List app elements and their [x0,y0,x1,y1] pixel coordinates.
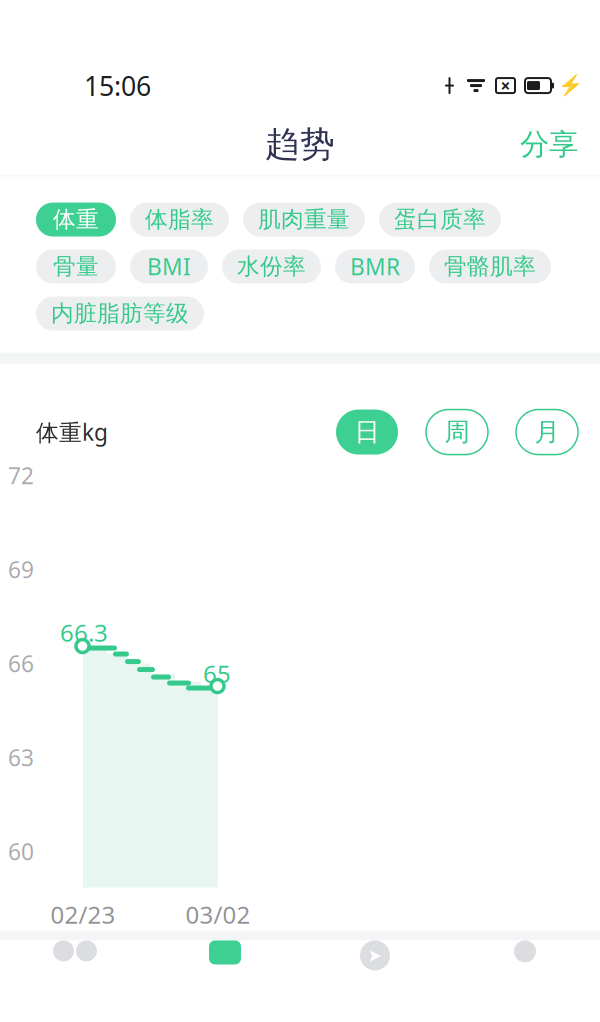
staticText: BMR [350,251,400,282]
staticText: 月 [534,416,559,448]
staticText: 周 [444,416,469,448]
staticText: 蛋白质率 [394,206,486,233]
staticText: 03/02 [185,899,250,930]
staticText: 66.3 [60,617,108,648]
button[interactable]: 发现 [300,940,450,964]
staticText: 趋势 [265,123,335,166]
button[interactable]: BMI [130,250,208,284]
button[interactable]: 内脏脂肪等级 [36,297,204,331]
staticText: 日 [354,416,379,448]
button[interactable]: 月 [516,410,578,455]
button[interactable]: 体脂率 [130,203,229,237]
button[interactable]: 蛋白质率 [379,203,501,237]
staticText: 骨骼肌率 [444,253,536,280]
button[interactable]: 水份率 [222,250,321,284]
staticText: 内脏脂肪等级 [51,300,189,327]
staticText: 骨量 [53,253,99,280]
staticText: 体重kg [36,417,108,447]
button[interactable]: 肌肉重量 [243,203,365,237]
button[interactable]: 骨骼肌率 [429,250,551,284]
staticText: 66 [8,648,34,679]
staticText: 02/23 [50,899,115,930]
staticText: 72 [8,460,34,491]
staticText: 63 [8,742,34,773]
button[interactable]: BMR [335,250,415,284]
staticText: × [500,74,510,97]
staticText: 水份率 [237,253,306,280]
button[interactable]: 分享 [506,118,592,170]
staticText: 肌肉重量 [258,206,350,233]
button[interactable]: 周 [426,410,488,455]
staticText: ⚡ [557,74,582,97]
staticText: 体重 [53,206,99,233]
staticText: 69 [8,554,34,585]
staticText: 15:06 [84,68,151,103]
staticText: 65 [203,658,231,689]
button[interactable]: 体重 [36,203,116,237]
button[interactable]: 趋势 [150,940,300,964]
button[interactable]: 称重 [0,940,150,964]
staticText: ➤ [367,946,382,965]
staticText: 60 [8,836,34,867]
button[interactable]: 日 [336,410,398,455]
button[interactable]: 我的 [450,940,600,964]
staticText: BMI [147,251,191,282]
staticText: 分享 [520,126,578,162]
button[interactable]: 骨量 [36,250,116,284]
staticText: 体脂率 [145,206,214,233]
